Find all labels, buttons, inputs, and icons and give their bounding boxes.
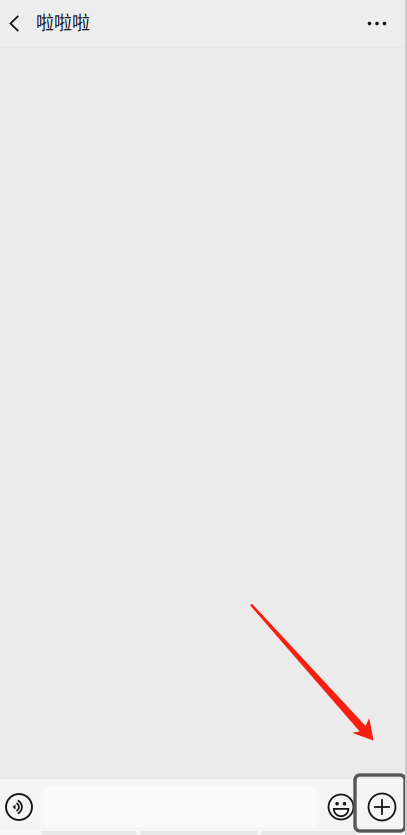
staticText: 啦啦啦	[36, 8, 90, 35]
button[interactable]: More	[363, 780, 401, 834]
button[interactable]: Back	[0, 0, 29, 47]
button[interactable]: More options	[355, 0, 399, 47]
button[interactable]: Emoji	[323, 780, 359, 834]
button[interactable]: Hold to talk	[0, 780, 39, 834]
